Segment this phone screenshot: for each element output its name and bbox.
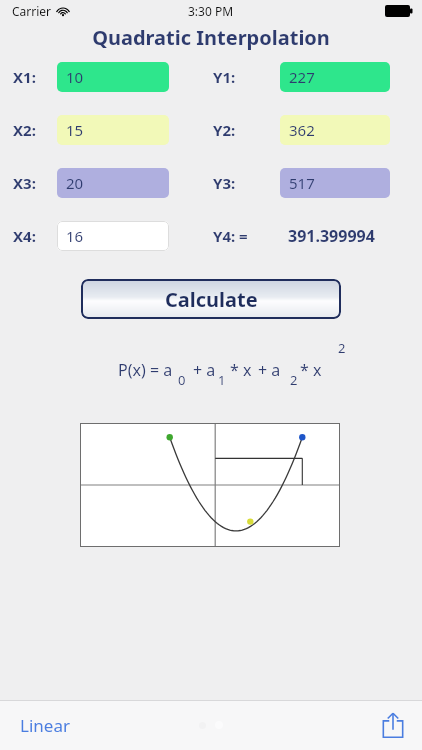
staticText: Y1: bbox=[213, 67, 236, 87]
staticText: 362 bbox=[289, 120, 315, 140]
button[interactable]: Share bbox=[376, 708, 410, 742]
staticText: 0 bbox=[178, 371, 186, 389]
staticText: 2 bbox=[338, 339, 346, 357]
staticText: P(x) = a bbox=[118, 359, 173, 381]
staticText: Calculate bbox=[165, 286, 258, 313]
staticText: X4: bbox=[13, 226, 36, 246]
staticText: 15 bbox=[66, 120, 84, 140]
button[interactable]: 517 bbox=[280, 168, 390, 198]
button[interactable]: Calculate bbox=[81, 279, 341, 319]
staticText: + a bbox=[193, 359, 216, 381]
staticText: 16 bbox=[66, 226, 84, 246]
staticText: Linear bbox=[20, 714, 70, 737]
staticText: Y2: bbox=[213, 120, 236, 140]
button[interactable]: 10 bbox=[57, 62, 169, 92]
button[interactable]: 15 bbox=[57, 115, 169, 145]
staticText: 20 bbox=[66, 173, 84, 193]
staticText: 391.399994 bbox=[288, 225, 375, 247]
staticText: Y4: = bbox=[213, 226, 248, 246]
staticText: X1: bbox=[13, 67, 36, 87]
staticText: + a bbox=[258, 359, 281, 381]
staticText: 3:30 PM bbox=[188, 3, 234, 19]
staticText: 1 bbox=[218, 371, 226, 389]
button[interactable]: 227 bbox=[280, 62, 390, 92]
staticText: 227 bbox=[289, 67, 315, 87]
staticText: * x bbox=[300, 359, 322, 381]
staticText: * x bbox=[230, 359, 252, 381]
button[interactable]: 16 bbox=[57, 221, 169, 251]
button[interactable]: 20 bbox=[57, 168, 169, 198]
staticText: Y3: bbox=[213, 173, 236, 193]
staticText: Quadratic Interpolation bbox=[92, 24, 330, 51]
button[interactable]: 362 bbox=[280, 115, 390, 145]
staticText: X3: bbox=[13, 173, 36, 193]
button[interactable]: Linear bbox=[12, 708, 78, 743]
staticText: 10 bbox=[66, 67, 84, 87]
staticText: X2: bbox=[13, 120, 36, 140]
staticText: 2 bbox=[290, 371, 298, 389]
staticText: Carrier bbox=[12, 3, 52, 19]
staticText: 517 bbox=[289, 173, 315, 193]
